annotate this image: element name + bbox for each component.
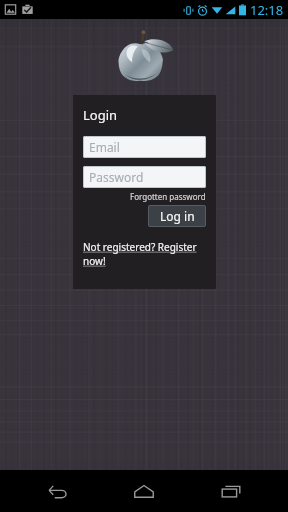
staticText: Password	[89, 169, 144, 185]
staticText: Email	[89, 139, 120, 155]
button[interactable]: Not registered? Register now!	[83, 240, 206, 268]
button[interactable]: Back	[27, 470, 87, 512]
button[interactable]: Home	[114, 470, 174, 512]
button[interactable]: Forgotten password	[83, 191, 206, 202]
button[interactable]: Password	[83, 166, 206, 188]
staticText: Login	[83, 106, 118, 124]
staticText: Forgotten password	[130, 191, 206, 202]
staticText: 12:18	[250, 1, 284, 19]
button[interactable]: Email	[83, 136, 206, 158]
button[interactable]: Log in	[148, 205, 206, 227]
button[interactable]: Recent apps	[201, 470, 261, 512]
staticText: Not registered? Register now!	[83, 240, 206, 268]
staticText: Log in	[160, 208, 195, 224]
